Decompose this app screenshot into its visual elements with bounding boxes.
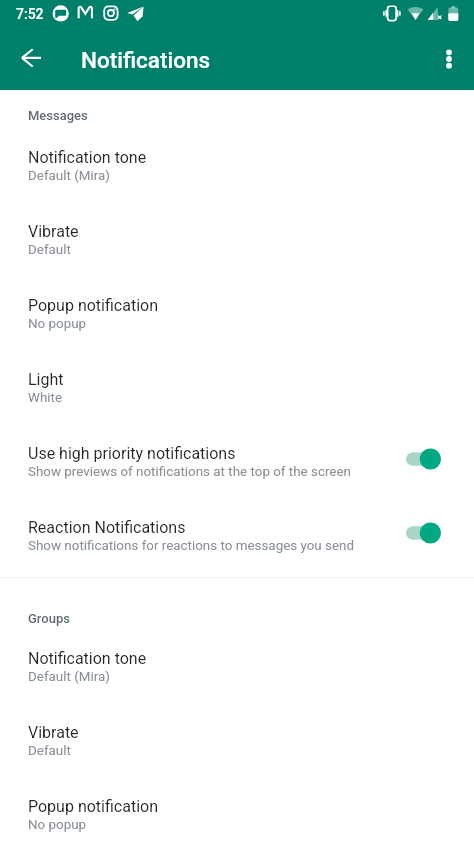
staticText: Default (28, 743, 71, 759)
button[interactable]: Vibrate (0, 704, 474, 778)
button[interactable]: Vibrate (0, 203, 474, 277)
button[interactable]: Popup notification (0, 778, 474, 842)
staticText: Groups (28, 611, 70, 626)
staticText: No popup (28, 817, 87, 833)
staticText: Use high priority notifications (28, 444, 236, 463)
staticText: Notification tone (28, 649, 147, 668)
button[interactable]: More options (425, 34, 473, 82)
staticText: Notifications (81, 47, 211, 73)
staticText: White (28, 390, 62, 406)
staticText: Messages (28, 108, 88, 123)
staticText: Default (28, 242, 71, 258)
staticText: Vibrate (28, 222, 79, 241)
staticText: Default (Mira) (28, 669, 110, 685)
button[interactable]: Reaction Notifications (0, 499, 474, 573)
button[interactable]: Use high priority notifications (0, 425, 474, 499)
staticText: Reaction Notifications (28, 518, 186, 537)
staticText: Popup notification (28, 797, 158, 816)
staticText: Notification tone (28, 148, 147, 167)
staticText: Vibrate (28, 723, 79, 742)
staticText: 7:52 (16, 6, 44, 22)
button[interactable]: Popup notification (0, 277, 474, 351)
button[interactable]: Back (4, 34, 52, 82)
staticText: Light (28, 370, 64, 389)
staticText: Default (Mira) (28, 168, 110, 184)
staticText: No popup (28, 316, 87, 332)
button[interactable]: Notification tone (0, 630, 474, 704)
button[interactable]: Notification tone (0, 129, 474, 203)
staticText: Popup notification (28, 296, 158, 315)
staticText: Show notifications for reactions to mess… (28, 538, 355, 554)
staticText: Show previews of notifications at the to… (28, 464, 351, 480)
button[interactable]: Light (0, 351, 474, 425)
